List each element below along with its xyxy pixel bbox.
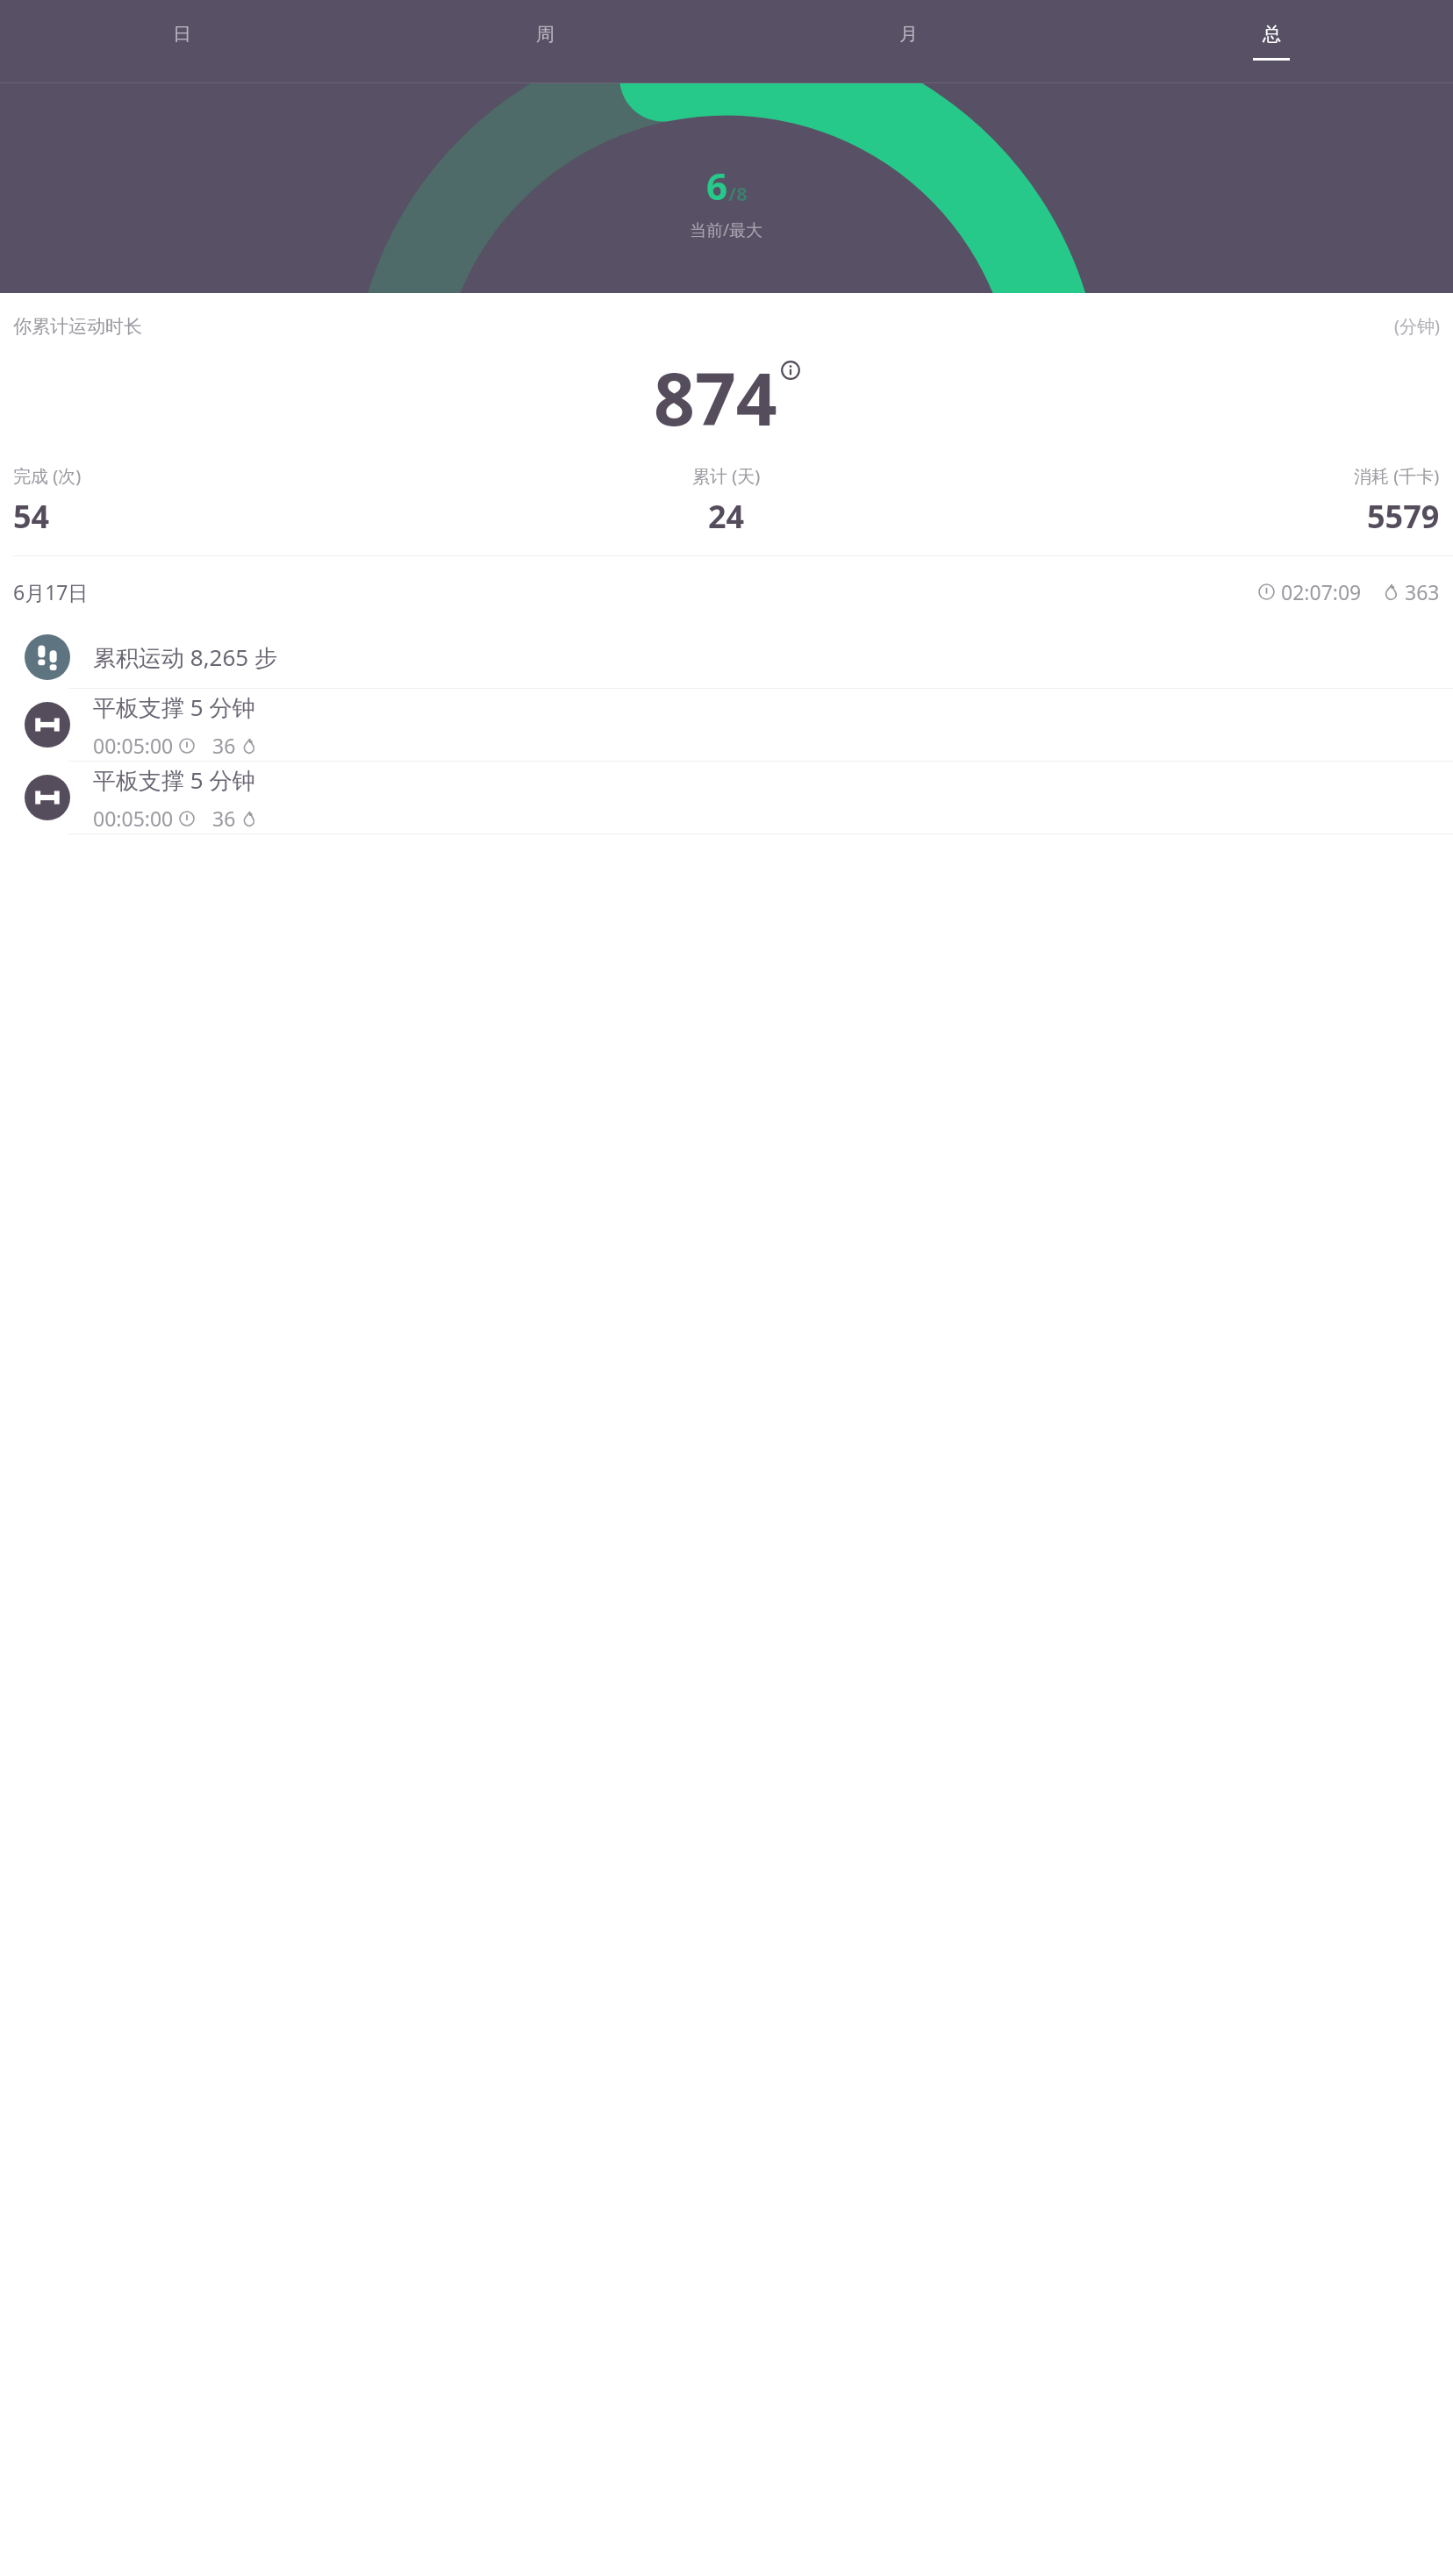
staticText: 54 — [13, 495, 50, 538]
staticText: 消耗 (千卡) — [1354, 464, 1440, 488]
staticText: 5579 — [1367, 495, 1440, 538]
button[interactable]: 平板支撑 5 分钟 — [0, 762, 1453, 834]
staticText: (分钟) — [1394, 314, 1440, 338]
staticText: 你累计运动时长 — [13, 315, 142, 338]
staticText: 363 — [1405, 578, 1440, 605]
staticText: 02:07:09 — [1281, 578, 1362, 605]
staticText: /8 — [728, 180, 748, 206]
staticText: 日 — [173, 23, 191, 46]
staticText: 月 — [899, 23, 918, 46]
staticText: 平板支撑 5 分钟 — [93, 691, 255, 723]
staticText: 00:05:00 — [93, 732, 174, 759]
button[interactable]: 总 — [1090, 0, 1453, 83]
button[interactable]: 累积运动 8,265 步 — [0, 626, 1453, 688]
staticText: 00:05:00 — [93, 805, 174, 832]
staticText: 累计 (天) — [692, 464, 761, 488]
staticText: 36 — [212, 805, 236, 832]
staticText: 平板支撑 5 分钟 — [93, 764, 255, 796]
button[interactable]: 日 — [0, 0, 363, 83]
staticText: 874 — [654, 348, 777, 447]
staticText: 累积运动 8,265 步 — [93, 641, 277, 673]
button[interactable]: 平板支撑 5 分钟 — [0, 689, 1453, 761]
staticText: 24 — [708, 495, 745, 538]
button[interactable]: 周 — [363, 0, 726, 83]
staticText: 周 — [536, 23, 555, 46]
staticText: 6月17日 — [13, 578, 89, 605]
button[interactable]: 月 — [726, 0, 1090, 83]
staticText: 6 — [706, 161, 728, 211]
staticText: 总 — [1263, 23, 1281, 46]
staticText: 完成 (次) — [13, 464, 82, 488]
staticText: 36 — [212, 732, 236, 759]
other: Info — [781, 361, 800, 380]
staticText: 当前/最大 — [690, 218, 763, 241]
